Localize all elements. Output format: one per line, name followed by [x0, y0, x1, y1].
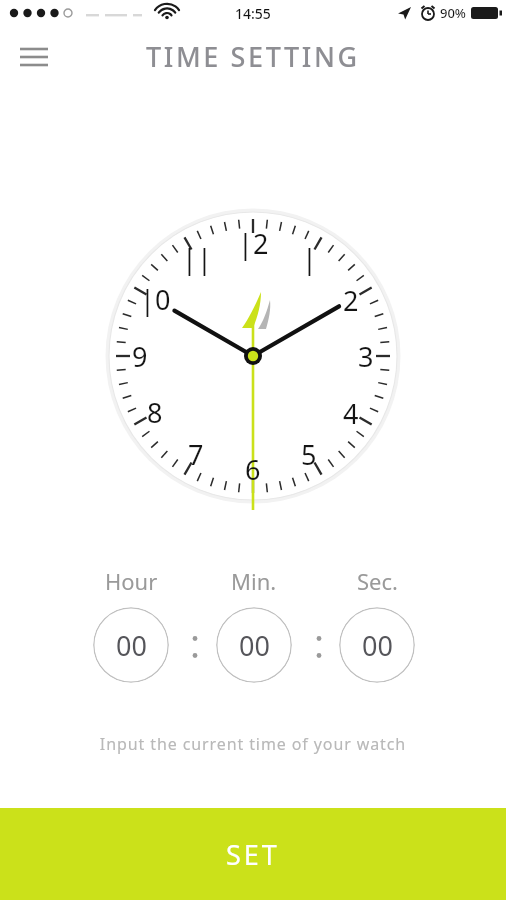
- button[interactable]: 00: [93, 607, 169, 683]
- staticText: |2: [238, 225, 269, 262]
- staticText: |: [302, 240, 317, 277]
- staticText: 5: [301, 436, 317, 473]
- staticText: 14:55: [235, 4, 271, 23]
- staticText: 8: [147, 394, 163, 431]
- staticText: 90%: [440, 4, 466, 22]
- staticText: 6: [245, 451, 261, 488]
- button[interactable]: 00: [216, 607, 292, 683]
- staticText: 00: [116, 627, 147, 664]
- staticText: Hour: [105, 566, 158, 596]
- staticText: ||: [182, 240, 212, 277]
- staticText: Input the current time of your watch: [0, 733, 506, 755]
- staticText: Min.: [231, 566, 277, 596]
- staticText: |0: [140, 281, 171, 318]
- staticText: 7: [188, 436, 204, 473]
- staticText: 00: [362, 627, 393, 664]
- staticText: SET: [226, 836, 280, 873]
- staticText: Sec.: [357, 566, 398, 596]
- staticText: TIME SETTING: [146, 38, 360, 75]
- button[interactable]: SET: [0, 808, 506, 900]
- button[interactable]: 00: [339, 607, 415, 683]
- staticText: 2: [343, 282, 359, 319]
- staticText: 9: [132, 338, 148, 375]
- staticText: 3: [358, 338, 374, 375]
- button[interactable]: Menu: [12, 35, 56, 79]
- staticText: 00: [239, 627, 270, 664]
- staticText: 4: [343, 395, 359, 432]
